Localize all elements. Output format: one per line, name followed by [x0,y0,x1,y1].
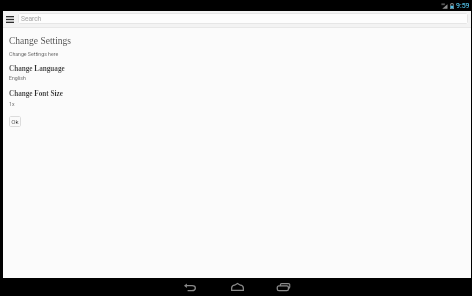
staticText: Change Settings here [9,51,59,57]
staticText: 1x [9,101,15,107]
staticText: English [9,75,26,81]
button[interactable]: Back [177,278,203,296]
button[interactable]: Home [224,278,250,296]
staticText: Search [21,15,42,23]
button[interactable]: Search [18,13,468,24]
staticText: 9:59 [456,2,470,10]
staticText: Change Language [9,65,65,73]
button[interactable]: Ok [9,116,21,127]
staticText: Ok [11,118,19,125]
button[interactable]: Recent apps [270,278,296,296]
button[interactable]: Menu [3,11,19,28]
staticText: Change Settings [9,36,72,47]
staticText: Change Font Size [9,90,63,98]
